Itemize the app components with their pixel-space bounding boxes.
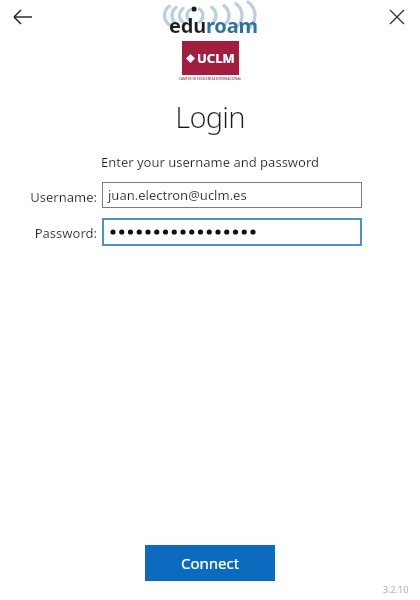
staticText: Enter your username and password	[0, 153, 420, 171]
button[interactable]: Connect	[145, 545, 275, 581]
staticText: CAMPUS DE EXCELENCIA INTERNACIONAL	[179, 77, 242, 81]
staticText: juan.electron@uclm.es	[108, 186, 247, 204]
staticText: Connect	[181, 553, 240, 573]
staticText: edu	[169, 12, 206, 39]
staticText: Username:	[0, 188, 97, 206]
staticText: Password:	[0, 224, 97, 242]
button[interactable]	[384, 4, 410, 30]
staticText: roam	[206, 12, 258, 39]
button[interactable]	[102, 218, 362, 246]
staticText: 3.2.10	[383, 583, 409, 595]
staticText: Login	[0, 97, 420, 136]
button[interactable]	[8, 6, 40, 30]
button[interactable]: juan.electron@uclm.es	[102, 182, 362, 208]
staticText: UCLM	[197, 49, 235, 67]
